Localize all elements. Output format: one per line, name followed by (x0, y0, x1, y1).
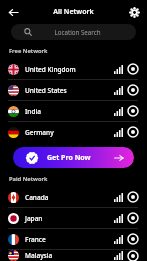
button[interactable]: Get Pro Now (13, 147, 134, 168)
staticText: Location Search (32, 28, 123, 36)
button[interactable]: Canada (0, 187, 147, 207)
button[interactable]: France (0, 229, 147, 249)
staticText: Free Network (9, 47, 48, 55)
button[interactable]: India (0, 101, 147, 121)
staticText: Japan (25, 214, 114, 223)
button[interactable]: Location Search (11, 24, 136, 40)
button[interactable]: Japan (0, 208, 147, 228)
button[interactable]: United States (0, 80, 147, 100)
button[interactable]: Malaysia (0, 250, 147, 261)
staticText: India (25, 107, 114, 116)
button[interactable]: Germany (0, 122, 147, 142)
staticText: France (25, 235, 114, 244)
button[interactable]: Back (5, 4, 22, 21)
staticText: United States (25, 86, 114, 95)
button[interactable]: United Kingdom (0, 59, 147, 79)
staticText: Get Pro Now (47, 153, 91, 163)
staticText: Malaysia (25, 251, 114, 260)
staticText: United Kingdom (25, 65, 114, 74)
staticText: Canada (25, 193, 114, 202)
staticText: Paid Network (9, 175, 48, 183)
staticText: Germany (25, 128, 114, 137)
staticText: All Network (53, 7, 94, 17)
button[interactable]: Settings (126, 4, 143, 21)
